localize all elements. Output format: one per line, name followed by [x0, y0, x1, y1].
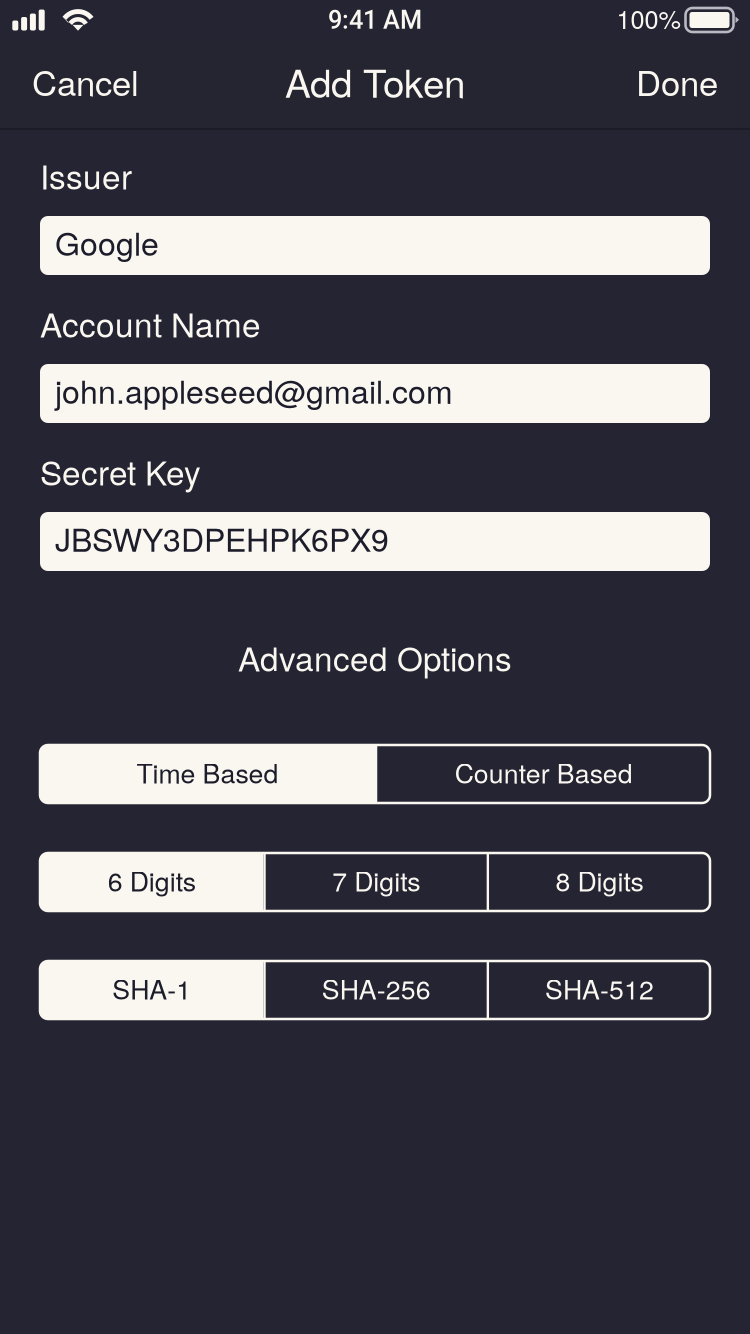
- staticText: john.appleseed@gmail.com: [55, 367, 453, 413]
- staticText: Secret Key: [40, 447, 201, 495]
- button[interactable]: SHA-1: [40, 961, 263, 1019]
- staticText: SHA-1: [112, 969, 191, 1007]
- button[interactable]: Time Based: [40, 745, 375, 803]
- button[interactable]: 8 Digits: [487, 853, 710, 911]
- button[interactable]: Advanced Options: [40, 633, 710, 681]
- staticText: 6 Digits: [108, 861, 196, 899]
- staticText: Cancel: [32, 56, 139, 106]
- button[interactable]: SHA-512: [487, 961, 710, 1019]
- staticText: Counter Based: [455, 753, 633, 791]
- staticText: Add Token: [285, 53, 465, 109]
- button[interactable]: 6 Digits: [40, 853, 263, 911]
- staticText: Time Based: [136, 753, 278, 791]
- staticText: 9:41 AM: [328, 5, 422, 35]
- staticText: 100%: [616, 0, 681, 36]
- staticText: 7 Digits: [332, 861, 420, 899]
- button[interactable]: Done: [604, 40, 750, 128]
- button[interactable]: Google: [40, 216, 710, 275]
- staticText: Issuer: [40, 151, 132, 199]
- button[interactable]: Counter Based: [375, 745, 710, 803]
- staticText: SHA-512: [545, 969, 654, 1007]
- staticText: Advanced Options: [238, 633, 512, 681]
- staticText: Done: [636, 56, 718, 106]
- button[interactable]: SHA-256: [263, 961, 487, 1019]
- staticText: Account Name: [40, 299, 261, 347]
- button[interactable]: 7 Digits: [263, 853, 487, 911]
- staticText: SHA-256: [322, 969, 431, 1007]
- staticText: Google: [55, 219, 159, 265]
- staticText: 8 Digits: [556, 861, 644, 899]
- staticText: JBSWY3DPEHPK6PX9: [55, 515, 389, 561]
- button[interactable]: JBSWY3DPEHPK6PX9: [40, 512, 710, 571]
- button[interactable]: Cancel: [0, 40, 171, 128]
- button[interactable]: john.appleseed@gmail.com: [40, 364, 710, 423]
